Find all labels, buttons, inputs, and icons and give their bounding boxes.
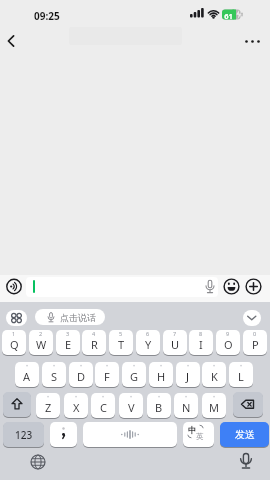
button[interactable] (243, 310, 261, 326)
staticText: • (213, 393, 216, 400)
button[interactable]: • (15, 362, 39, 387)
button[interactable]: • (91, 393, 115, 418)
staticText: K (211, 369, 218, 384)
staticText: • (213, 362, 216, 369)
button[interactable]: • (229, 362, 253, 387)
staticText: 点击说话 (60, 312, 96, 323)
staticText: • (26, 362, 29, 369)
staticText: B (155, 400, 163, 415)
staticText: P (252, 337, 259, 352)
button[interactable]: • (119, 393, 143, 418)
staticText: V (128, 400, 135, 415)
staticText: C (100, 400, 107, 415)
button[interactable] (83, 422, 177, 447)
button[interactable]: • (174, 393, 198, 418)
staticText: Z (45, 400, 52, 415)
button[interactable]: • (42, 362, 66, 387)
staticText: S (51, 369, 58, 384)
button[interactable]: 点击说话 (35, 309, 105, 325)
button[interactable] (6, 310, 27, 326)
staticText: 中 (188, 425, 197, 436)
button[interactable]: • (122, 362, 146, 387)
staticText: 3 (66, 330, 70, 337)
staticText: 8 (199, 330, 203, 337)
button[interactable]: 4 (82, 330, 106, 355)
staticText: F (104, 369, 110, 384)
button[interactable] (26, 277, 218, 297)
button[interactable]: • (64, 393, 88, 418)
button[interactable]: 3 (56, 330, 80, 355)
button[interactable]: 7 (163, 330, 187, 355)
button[interactable]: • (36, 393, 60, 418)
staticText: E (65, 337, 72, 352)
button[interactable]: • (176, 362, 200, 387)
staticText: T (118, 337, 125, 352)
button[interactable]: • (202, 362, 226, 387)
staticText: 9 (226, 330, 230, 337)
staticText: D (77, 369, 86, 384)
button[interactable] (245, 278, 262, 295)
staticText: 61 (222, 11, 235, 20)
staticText: M (209, 400, 219, 415)
staticText: 4 (92, 330, 96, 337)
button[interactable]: • (202, 393, 226, 418)
button[interactable]: • (149, 362, 173, 387)
button[interactable] (223, 278, 240, 295)
button[interactable]: 123 (3, 422, 44, 447)
staticText: 6 (146, 330, 150, 337)
staticText: • (160, 362, 163, 369)
staticText: H (157, 369, 166, 384)
button[interactable]: 5 (109, 330, 133, 355)
staticText: 2 (39, 330, 43, 337)
staticText: A (23, 369, 31, 384)
staticText: 5 (119, 330, 123, 337)
button[interactable] (50, 422, 77, 447)
button[interactable]: 8 (189, 330, 213, 355)
button[interactable] (233, 392, 263, 417)
button[interactable]: 发送 (220, 422, 269, 447)
staticText: • (75, 393, 78, 400)
staticText: 英 (196, 432, 204, 441)
staticText: I (199, 337, 203, 352)
staticText: • (133, 362, 136, 369)
staticText: L (238, 369, 244, 384)
staticText: 发送 (235, 428, 255, 441)
button[interactable]: 0 (243, 330, 267, 355)
button[interactable] (240, 30, 266, 52)
staticText: 09:25 (34, 9, 60, 23)
button[interactable] (28, 452, 48, 472)
staticText: J (186, 369, 190, 384)
staticText: G (130, 369, 139, 384)
staticText: • (106, 362, 109, 369)
staticText: • (185, 393, 188, 400)
button[interactable]: 2 (29, 330, 53, 355)
button[interactable] (5, 278, 23, 295)
button[interactable] (0, 28, 28, 54)
button[interactable]: • (69, 362, 93, 387)
button[interactable]: 9 (216, 330, 240, 355)
button[interactable] (237, 452, 255, 474)
staticText: • (80, 362, 83, 369)
staticText: • (47, 393, 50, 400)
button[interactable]: • (147, 393, 171, 418)
staticText: • (187, 362, 190, 369)
button[interactable]: 6 (136, 330, 160, 355)
staticText: • (240, 362, 243, 369)
staticText: U (171, 337, 180, 352)
button[interactable]: 1 (2, 330, 26, 355)
staticText: Q (10, 337, 19, 352)
staticText: R (91, 337, 98, 352)
staticText: 7 (173, 330, 177, 337)
staticText: • (130, 393, 133, 400)
staticText: O (224, 337, 233, 352)
button[interactable] (3, 392, 31, 417)
staticText: • (102, 393, 105, 400)
staticText: Y (145, 337, 152, 352)
staticText: W (36, 337, 47, 352)
button[interactable]: • (95, 362, 119, 387)
staticText: • (158, 393, 161, 400)
staticText: 123 (15, 428, 33, 442)
staticText: X (73, 400, 80, 415)
staticText: N (182, 400, 191, 415)
button[interactable]: 中 (183, 422, 214, 447)
